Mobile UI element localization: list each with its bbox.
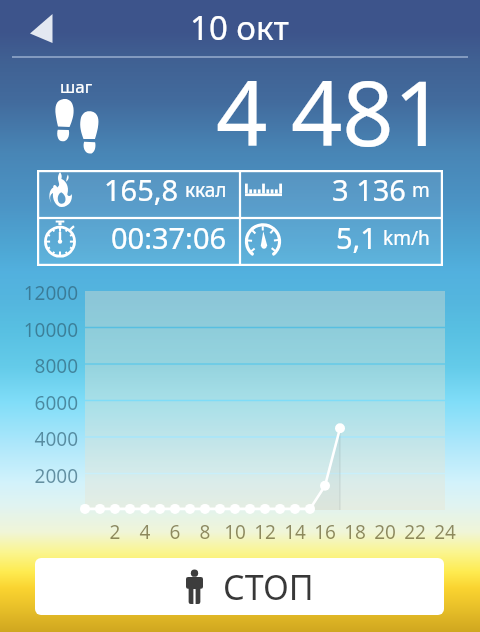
staticText: m [412, 177, 430, 203]
staticText: 12000 [6, 280, 78, 306]
staticText: шаг [60, 75, 93, 98]
staticText: 4 481 [216, 50, 446, 173]
button[interactable]: СТОП [35, 558, 444, 615]
button[interactable]: 00:37:06 [37, 218, 240, 257]
staticText: 10000 [6, 317, 78, 343]
staticText: 165,8 [104, 170, 179, 209]
button[interactable]: Back [14, 5, 68, 53]
button[interactable]: 165,8 [37, 170, 240, 209]
staticText: 16 [305, 519, 345, 545]
staticText: 10 окт [190, 5, 289, 50]
staticText: 10 [215, 519, 255, 545]
staticText: 22 [395, 519, 435, 545]
staticText: 2 [95, 519, 135, 545]
staticText: 4000 [6, 426, 78, 452]
staticText: 6000 [6, 390, 78, 416]
staticText: 00:37:06 [111, 218, 227, 257]
staticText: km/h [383, 225, 430, 251]
staticText: 6 [155, 519, 195, 545]
staticText: 24 [425, 519, 465, 545]
staticText: 4 [125, 519, 165, 545]
staticText: 8 [185, 519, 225, 545]
staticText: СТОП [223, 564, 314, 610]
staticText: ккал [185, 177, 227, 203]
staticText: 2000 [6, 463, 78, 489]
staticText: 18 [335, 519, 375, 545]
staticText: 20 [365, 519, 405, 545]
staticText: 8000 [6, 353, 78, 379]
staticText: 5,1 [336, 218, 377, 257]
button[interactable]: 5,1 [240, 218, 443, 257]
staticText: 14 [275, 519, 315, 545]
staticText: 12 [245, 519, 285, 545]
button[interactable]: 3 136 [240, 170, 443, 209]
staticText: 3 136 [332, 170, 406, 209]
